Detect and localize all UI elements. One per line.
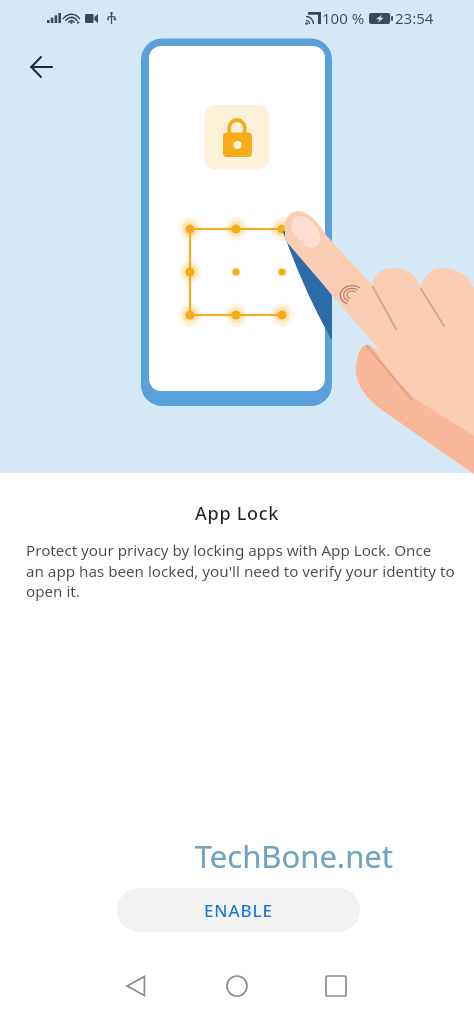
staticText: 23:54	[395, 8, 434, 28]
button[interactable]: Home	[213, 964, 261, 1008]
button[interactable]: Recent apps	[312, 964, 360, 1008]
button[interactable]: ENABLE	[117, 888, 360, 932]
staticText: TechBone.net	[0, 835, 393, 877]
staticText: 100 %	[322, 8, 365, 28]
button[interactable]: Back	[16, 42, 65, 91]
staticText: Protect your privacy by locking apps wit…	[26, 540, 474, 601]
staticText: App Lock	[0, 501, 474, 526]
button[interactable]: Back	[112, 964, 160, 1008]
staticText: ENABLE	[204, 899, 273, 922]
